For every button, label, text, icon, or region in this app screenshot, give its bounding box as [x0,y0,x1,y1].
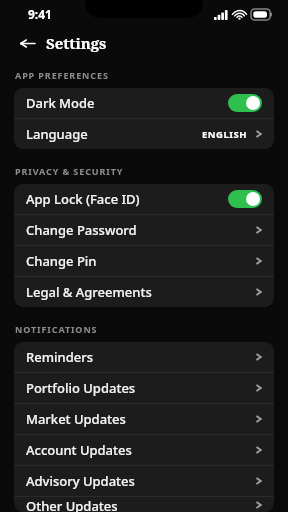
staticText: Change Pin [26,252,256,270]
other: On [228,190,262,208]
button[interactable]: Change Password [14,215,274,245]
staticText: Other Updates [26,497,256,512]
button[interactable]: Account Updates [14,435,274,465]
staticText: Reminders [26,348,256,366]
other: On [228,94,262,112]
button[interactable]: Dark Mode [14,88,274,118]
button[interactable]: Portfolio Updates [14,373,274,403]
button[interactable]: App Lock (Face ID) [14,184,274,214]
staticText: Advisory Updates [26,472,256,490]
staticText: ENGLISH [202,128,247,141]
staticText: Portfolio Updates [26,379,256,397]
staticText: Market Updates [26,410,256,428]
staticText: Change Password [26,221,256,239]
button[interactable]: Back [14,30,40,56]
button[interactable]: Change Pin [14,246,274,276]
staticText: NOTIFICATIONS [15,323,98,335]
staticText: PRIVACY & SECURITY [15,165,124,177]
button[interactable]: Other Updates [14,497,274,512]
staticText: Account Updates [26,441,256,459]
staticText: Legal & Agreements [26,283,256,301]
staticText: 9:41 [28,6,52,22]
button[interactable]: Language [14,119,274,149]
staticText: Settings [46,33,107,53]
staticText: App Lock (Face ID) [26,190,228,208]
button[interactable]: Market Updates [14,404,274,434]
staticText: APP PREFERENCES [15,69,109,81]
button[interactable]: Reminders [14,342,274,372]
staticText: Dark Mode [26,94,228,112]
button[interactable]: Advisory Updates [14,466,274,496]
staticText: Language [26,125,202,143]
button[interactable]: Legal & Agreements [14,277,274,307]
